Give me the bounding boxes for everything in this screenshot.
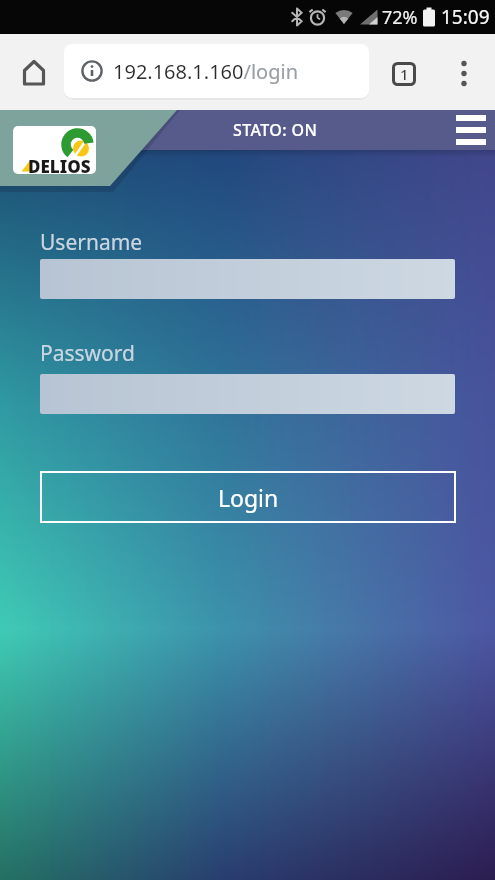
staticText: Username (40, 228, 143, 257)
button[interactable] (14, 51, 54, 93)
staticText: DELIOS (28, 155, 91, 174)
staticText: Login (218, 482, 279, 513)
button[interactable]: 192.168.1.160/login (64, 44, 369, 98)
button[interactable] (448, 53, 480, 95)
staticText: 72% (382, 5, 418, 30)
staticText: Password (40, 339, 135, 368)
button[interactable]: Login (40, 471, 456, 523)
staticText: 1 (400, 64, 409, 84)
staticText: 192.168.1.160/login (113, 58, 298, 85)
button[interactable] (456, 115, 486, 145)
button[interactable] (40, 374, 455, 414)
button[interactable]: 1 (385, 56, 423, 92)
staticText: 15:09 (441, 4, 490, 30)
button[interactable] (40, 259, 455, 299)
staticText: STATO: ON (233, 119, 318, 141)
